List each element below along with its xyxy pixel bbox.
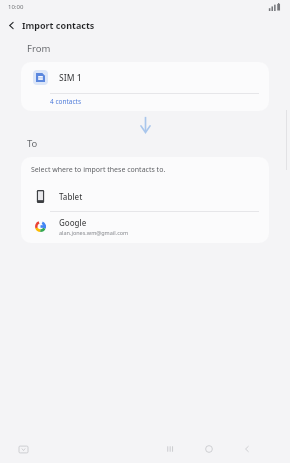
- staticText: To: [27, 137, 38, 150]
- staticText: SIM 1: [59, 72, 82, 84]
- button[interactable]: Recents: [161, 440, 179, 458]
- button[interactable]: 4 contacts: [21, 94, 269, 111]
- staticText: Select where to import these contacts to…: [31, 165, 166, 175]
- button[interactable]: Tablet: [21, 183, 269, 211]
- button[interactable]: SIM 1: [21, 62, 269, 93]
- button[interactable]: Back: [238, 440, 256, 458]
- staticText: Google: [59, 217, 87, 228]
- staticText: 10:00: [8, 3, 24, 11]
- button[interactable]: Back: [0, 14, 22, 36]
- staticText: Tablet: [59, 191, 83, 202]
- button[interactable]: Google: [21, 212, 269, 243]
- button[interactable]: Home: [200, 440, 218, 458]
- staticText: 4 contacts: [50, 97, 82, 106]
- staticText: alan.jones.wm@gmail.com: [59, 229, 129, 236]
- button[interactable]: Hide keyboard: [14, 440, 32, 458]
- staticText: Import contacts: [22, 19, 95, 31]
- staticText: From: [27, 42, 51, 55]
